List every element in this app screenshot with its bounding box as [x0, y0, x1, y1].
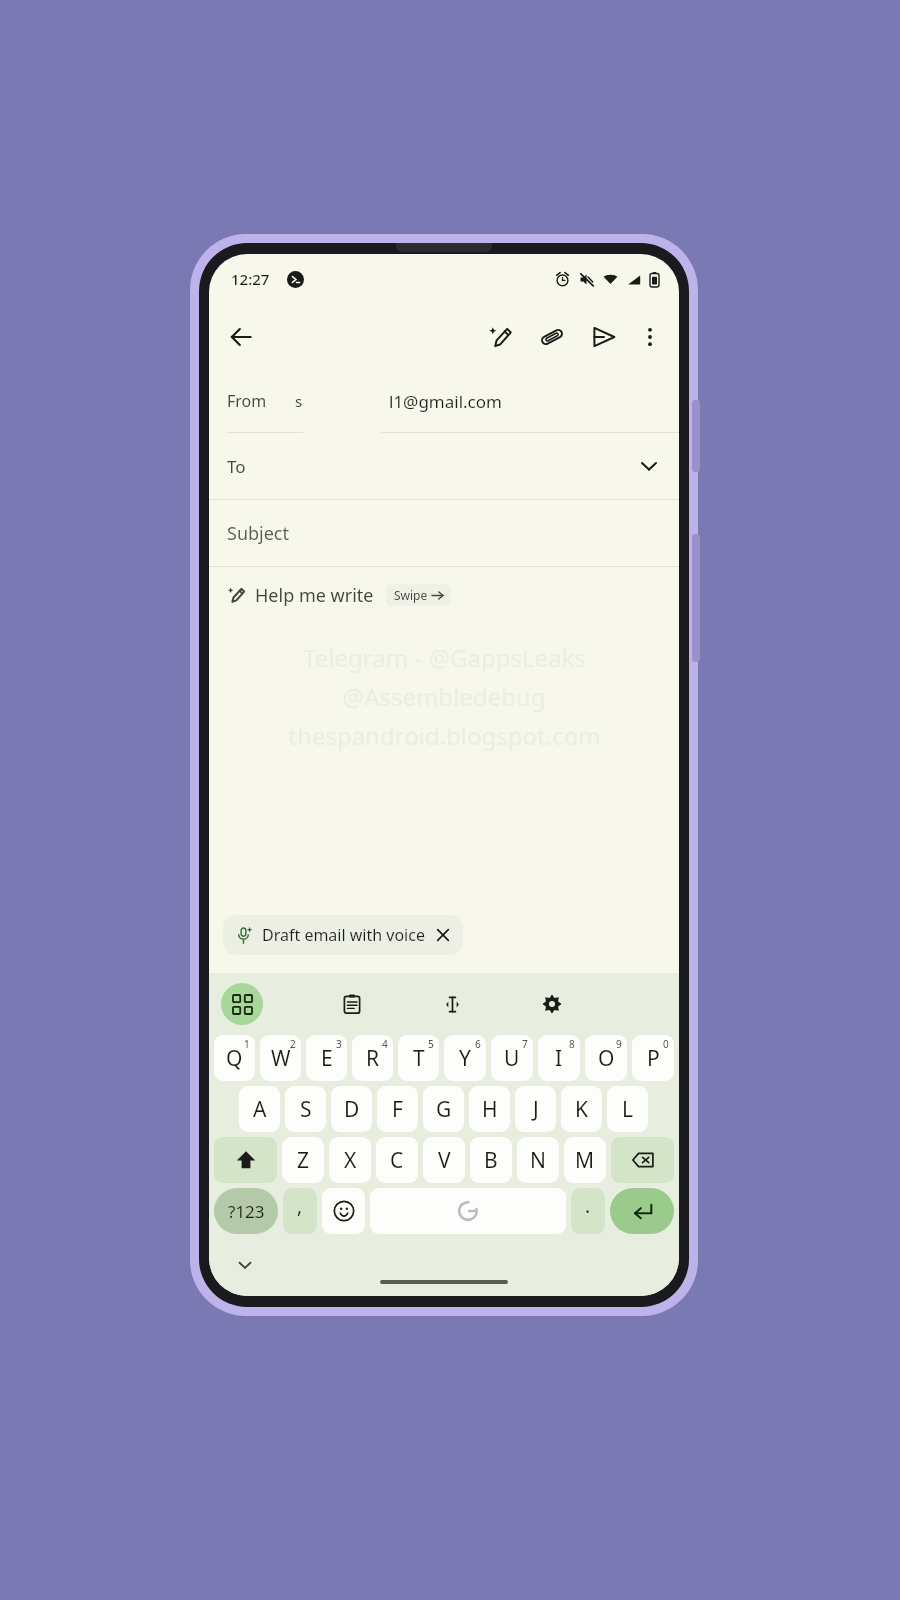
button[interactable]: Hide keyboard — [227, 1247, 263, 1283]
staticText: 0 — [663, 1037, 669, 1051]
staticText: Draft email with voice — [262, 924, 425, 946]
staticText: 12:27 — [231, 269, 270, 289]
staticText: M — [575, 1146, 595, 1175]
staticText: 6 — [475, 1037, 481, 1051]
staticText: Z — [297, 1146, 310, 1175]
button[interactable]: L — [607, 1086, 648, 1132]
staticText: J — [533, 1095, 539, 1124]
button[interactable]: Emoji — [322, 1188, 365, 1234]
button[interactable]: , — [283, 1188, 317, 1234]
staticText: . — [585, 1193, 591, 1219]
button[interactable]: Toolbox — [221, 983, 263, 1025]
button[interactable]: M — [564, 1137, 606, 1183]
staticText: @Assembledebug — [342, 680, 546, 713]
button[interactable]: Q — [214, 1035, 255, 1081]
staticText: Subject — [227, 521, 290, 546]
button[interactable]: Z — [282, 1137, 324, 1183]
staticText: C — [390, 1146, 404, 1175]
staticText: L — [622, 1095, 634, 1124]
button[interactable]: K — [561, 1086, 602, 1132]
button[interactable]: H — [469, 1086, 510, 1132]
staticText: 1 — [244, 1037, 250, 1051]
button[interactable]: T — [398, 1035, 439, 1081]
staticText: V — [438, 1146, 451, 1175]
button[interactable]: J — [515, 1086, 556, 1132]
staticText: Help me write — [255, 583, 374, 608]
button[interactable]: X — [329, 1137, 371, 1183]
staticText: E — [321, 1044, 333, 1073]
staticText: Y — [459, 1044, 471, 1073]
button[interactable]: E — [306, 1035, 347, 1081]
staticText: , — [297, 1193, 303, 1219]
staticText: O — [598, 1044, 615, 1073]
staticText: 9 — [616, 1037, 622, 1051]
button[interactable]: R — [352, 1035, 393, 1081]
button[interactable]: B — [470, 1137, 512, 1183]
button[interactable]: Clipboard — [331, 983, 373, 1025]
button[interactable]: Help me write — [209, 567, 679, 623]
staticText: W — [271, 1044, 291, 1073]
button[interactable]: To — [209, 433, 679, 499]
staticText: Swipe — [394, 587, 428, 603]
staticText: A — [253, 1095, 267, 1124]
staticText: ?123 — [228, 1200, 265, 1223]
button[interactable]: V — [423, 1137, 465, 1183]
staticText: Telegram - @GappsLeaks — [303, 641, 586, 674]
button[interactable]: Shift — [214, 1137, 277, 1183]
staticText: T — [413, 1044, 425, 1073]
staticText: From — [227, 390, 267, 412]
staticText: P — [647, 1044, 660, 1073]
staticText: R — [366, 1044, 380, 1073]
staticText: 4 — [382, 1037, 388, 1051]
staticText: To — [227, 455, 246, 478]
button[interactable]: ?123 — [214, 1188, 278, 1234]
staticText: H — [482, 1095, 498, 1124]
staticText: S — [300, 1095, 312, 1124]
button[interactable]: A — [239, 1086, 280, 1132]
staticText: 5 — [428, 1037, 434, 1051]
staticText: F — [392, 1095, 403, 1124]
staticText: s — [295, 391, 303, 411]
staticText: X — [344, 1146, 357, 1175]
staticText: N — [530, 1146, 546, 1175]
staticText: B — [484, 1146, 498, 1175]
button[interactable]: Help me write — [477, 314, 523, 360]
button[interactable]: Back — [217, 313, 265, 361]
button[interactable]: O — [585, 1035, 627, 1081]
button[interactable]: Space — [370, 1188, 566, 1234]
button[interactable]: Draft email with voice — [223, 915, 463, 955]
button[interactable]: U — [491, 1035, 533, 1081]
staticText: U — [504, 1044, 520, 1073]
button[interactable]: S — [285, 1086, 326, 1132]
button[interactable]: D — [331, 1086, 372, 1132]
staticText: thespandroid.blogspot.com — [288, 719, 601, 752]
button[interactable]: Subject — [209, 500, 679, 566]
button[interactable]: I — [538, 1035, 580, 1081]
button[interactable]: F — [377, 1086, 418, 1132]
staticText: Q — [226, 1044, 243, 1073]
button[interactable]: Send — [581, 314, 627, 360]
button[interactable]: Backspace — [611, 1137, 674, 1183]
button[interactable]: Y — [444, 1035, 486, 1081]
button[interactable]: Text editing — [431, 983, 473, 1025]
button[interactable]: G — [423, 1086, 464, 1132]
staticText: 2 — [290, 1037, 296, 1051]
staticText: I — [555, 1044, 563, 1073]
button[interactable]: More options — [627, 314, 673, 360]
button[interactable]: W — [260, 1035, 301, 1081]
button[interactable]: . — [571, 1188, 605, 1234]
staticText: 8 — [569, 1037, 575, 1051]
staticText: 7 — [522, 1037, 528, 1051]
button[interactable]: Attach — [529, 314, 575, 360]
button[interactable]: N — [517, 1137, 559, 1183]
staticText: G — [436, 1095, 452, 1124]
button[interactable]: Enter — [610, 1188, 674, 1234]
staticText: D — [344, 1095, 360, 1124]
staticText: K — [575, 1095, 588, 1124]
button[interactable]: C — [376, 1137, 418, 1183]
staticText: 3 — [336, 1037, 342, 1051]
button[interactable]: P — [632, 1035, 674, 1081]
button[interactable]: Expand recipients — [629, 446, 669, 486]
button[interactable]: Settings — [531, 983, 573, 1025]
button[interactable]: From — [209, 370, 679, 433]
